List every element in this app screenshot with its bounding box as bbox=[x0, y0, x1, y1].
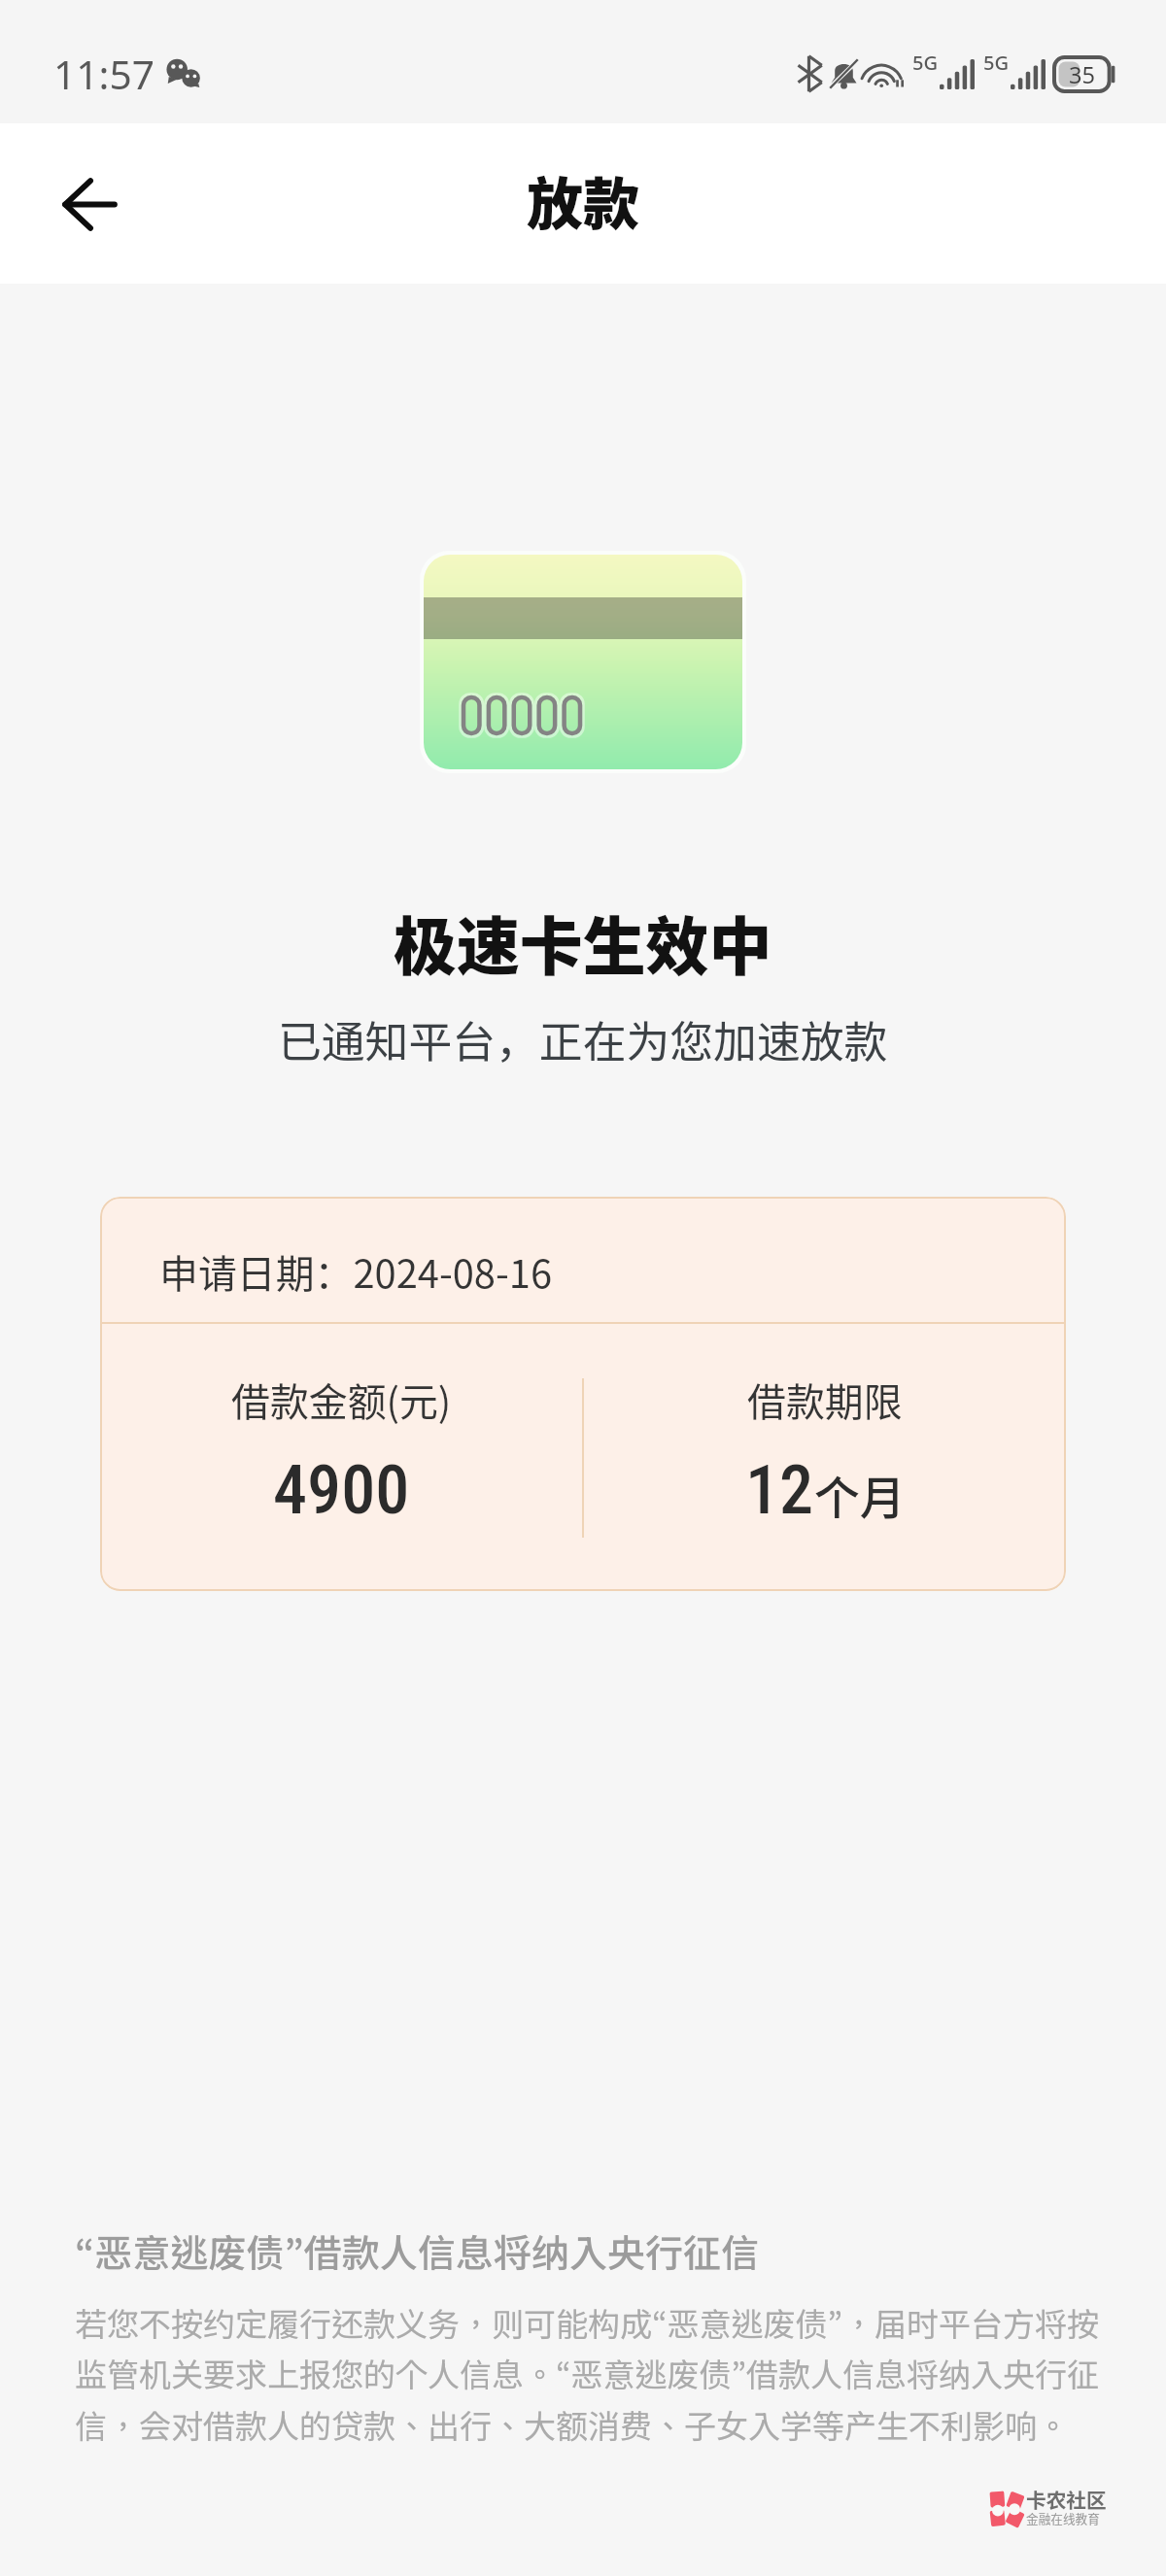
staticText: 极速卡生效中 bbox=[394, 897, 772, 988]
staticText: 12 bbox=[745, 1450, 814, 1530]
staticText: 申请日期：2024-08-16 bbox=[159, 1243, 553, 1300]
staticText: 金融在线教育 bbox=[1026, 2509, 1100, 2526]
staticText: 借款期限 bbox=[747, 1372, 903, 1428]
staticText: 若您不按约定履行还款义务，则可能构成“恶意逃废债”，届时平台方将按 监管机关要求… bbox=[75, 2305, 1100, 2445]
staticText: 卡农社区 bbox=[1026, 2485, 1107, 2514]
staticText: 35 bbox=[1069, 59, 1096, 90]
staticText: 放款 bbox=[527, 159, 640, 241]
staticText: 4900 bbox=[273, 1450, 410, 1530]
staticText: 个月 bbox=[814, 1462, 906, 1528]
staticText: 11:57 bbox=[53, 47, 154, 100]
staticText: “恶意逃废债”借款人信息将纳入央行征信 bbox=[75, 2230, 760, 2275]
button[interactable]: Back bbox=[33, 148, 146, 260]
staticText: 已通知平台，正在为您加速放款 bbox=[278, 1007, 888, 1070]
staticText: 5G bbox=[983, 50, 1010, 76]
staticText: 借款金额(元) bbox=[231, 1372, 452, 1428]
staticText: 5G bbox=[912, 50, 939, 76]
